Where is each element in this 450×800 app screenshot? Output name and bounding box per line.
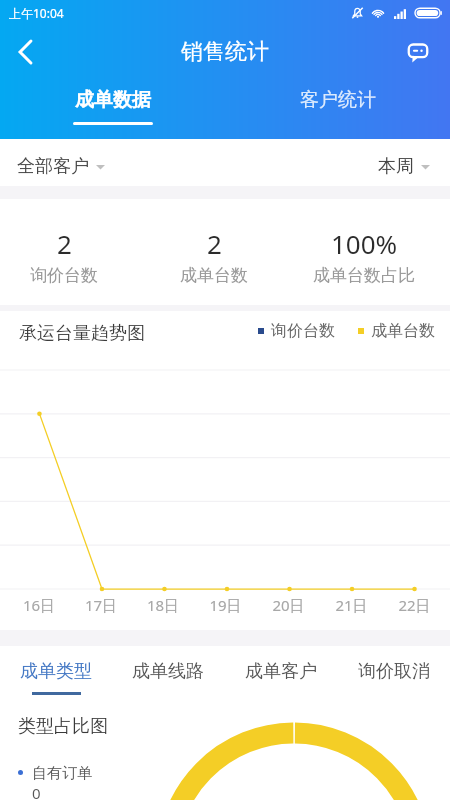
button[interactable]: 成单线路 [112,646,224,698]
button[interactable]: 2 [0,226,139,286]
staticText: 成单台数 [371,321,435,341]
staticText: 客户统计 [300,88,376,112]
button[interactable]: 询价取消 [337,646,450,698]
button[interactable]: 全部客户 [17,155,105,178]
staticText: 全部客户 [17,155,89,178]
staticText: 询价台数 [271,321,335,341]
staticText: 17日 [70,595,132,615]
staticText: 21日 [320,595,383,615]
button[interactable]: 本周 [378,155,430,178]
staticText: 2 [57,226,72,261]
button[interactable]: 成单台数 [358,321,435,341]
staticText: 成单类型 [20,660,92,683]
staticText: 成单客户 [245,660,317,683]
staticText: 询价台数 [30,265,98,286]
staticText: 成单线路 [132,660,204,683]
button[interactable]: 成单客户 [224,646,337,698]
staticText: 本周 [378,155,414,178]
button[interactable]: Messages [396,30,440,74]
button[interactable]: 成单类型 [0,646,112,698]
staticText: 2 [207,226,222,261]
button[interactable]: 客户统计 [225,78,450,122]
staticText: 承运台量趋势图 [19,322,145,345]
staticText: 成单台数占比 [313,265,415,286]
staticText: 18日 [132,595,194,615]
staticText: 自有订单 [32,764,92,783]
staticText: 成单数据 [75,88,151,112]
staticText: 询价取消 [358,660,430,683]
button[interactable]: Back [3,30,47,74]
staticText: 类型占比图 [18,715,108,738]
staticText: 20日 [257,595,320,615]
button[interactable]: 2 [139,226,289,286]
staticText: 19日 [194,595,257,615]
staticText: 100% [331,226,398,261]
staticText: 销售统计 [181,38,269,66]
staticText: 0 [32,783,41,800]
button[interactable]: 100% [289,226,439,286]
staticText: 16日 [8,595,70,615]
staticText: 22日 [383,595,446,615]
staticText: 成单台数 [180,265,248,286]
button[interactable]: 成单数据 [0,78,225,125]
button[interactable]: 询价台数 [258,321,335,341]
staticText: 上午10:04 [9,5,64,21]
